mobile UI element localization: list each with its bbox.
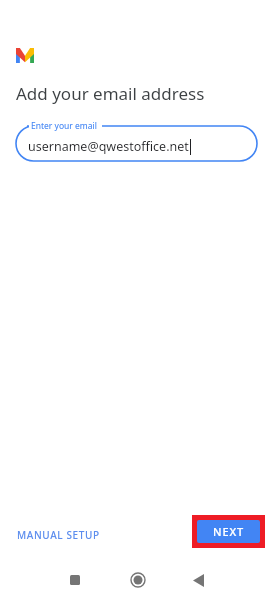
staticText: username@qwestoffice.net xyxy=(28,138,189,155)
button[interactable]: Enter your email xyxy=(16,120,257,166)
staticText: Add your email address xyxy=(16,82,205,105)
staticText: Enter your email xyxy=(31,120,97,132)
button[interactable]: Back xyxy=(185,567,211,593)
button[interactable]: MANUAL SETUP xyxy=(10,523,107,547)
button[interactable]: Home xyxy=(125,567,151,593)
staticText: NEXT xyxy=(213,524,244,539)
button[interactable]: Recent apps xyxy=(62,567,88,593)
button[interactable]: NEXT xyxy=(197,520,260,543)
staticText: MANUAL SETUP xyxy=(17,528,100,542)
